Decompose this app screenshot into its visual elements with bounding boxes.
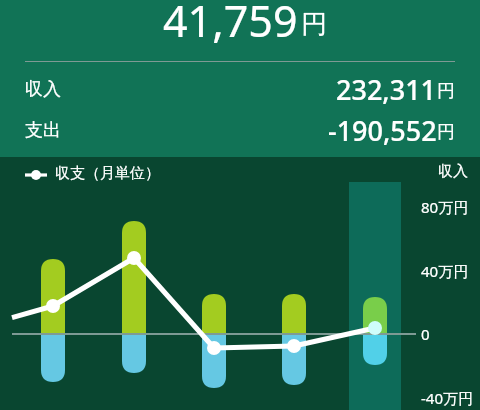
staticText: 支出 [25, 119, 61, 142]
other: 収支の推移 [25, 168, 47, 182]
staticText: 41,759 [163, 0, 298, 50]
staticText: 円 [437, 80, 455, 103]
staticText: 収入 [25, 78, 61, 101]
staticText: 収支（月単位） [55, 164, 160, 183]
staticText: 40万円 [421, 261, 469, 281]
staticText: -190,552 [328, 112, 437, 149]
staticText: -40万円 [421, 388, 473, 408]
staticText: 円 [301, 8, 327, 41]
staticText: 収入 [438, 162, 468, 181]
staticText: 80万円 [421, 197, 469, 217]
button[interactable]: 収入 [25, 71, 455, 108]
staticText: 232,311 [336, 71, 437, 108]
button[interactable]: 収支の推移 [25, 165, 160, 184]
button[interactable]: 支出 [25, 112, 455, 149]
staticText: 0 [421, 324, 430, 344]
staticText: 円 [437, 121, 455, 144]
